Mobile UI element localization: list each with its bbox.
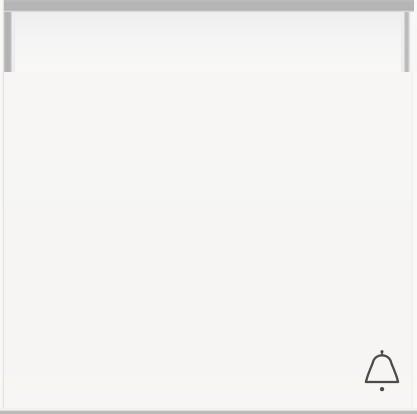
button[interactable]: Doorbell	[360, 348, 404, 394]
